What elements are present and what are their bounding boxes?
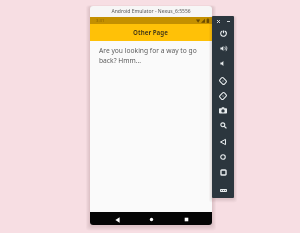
- button[interactable]: Home: [212, 149, 234, 164]
- button[interactable]: Volume up: [212, 41, 234, 56]
- button[interactable]: Rotate right: [212, 88, 234, 103]
- staticText: Other Page: [133, 28, 168, 36]
- button[interactable]: Home: [143, 214, 159, 225]
- button[interactable]: Rotate left: [212, 73, 234, 88]
- button[interactable]: Screenshot: [212, 103, 234, 118]
- staticText: Android Emulator - Nexus_6:5556: [111, 8, 191, 15]
- staticText: 3:31: [96, 18, 105, 24]
- button[interactable]: Overview: [212, 165, 234, 180]
- button[interactable]: Back: [212, 134, 234, 149]
- button[interactable]: Close: [215, 18, 221, 24]
- button[interactable]: More: [212, 183, 234, 198]
- button[interactable]: Recents: [178, 214, 194, 225]
- button[interactable]: Zoom: [212, 118, 234, 133]
- button[interactable]: Minimize: [225, 18, 231, 24]
- button[interactable]: Volume down: [212, 56, 234, 71]
- staticText: Are you looking for a way to go back? Hm…: [99, 46, 203, 65]
- button[interactable]: Power: [212, 26, 234, 41]
- button[interactable]: Other Page: [90, 24, 212, 41]
- button[interactable]: Back: [109, 214, 125, 225]
